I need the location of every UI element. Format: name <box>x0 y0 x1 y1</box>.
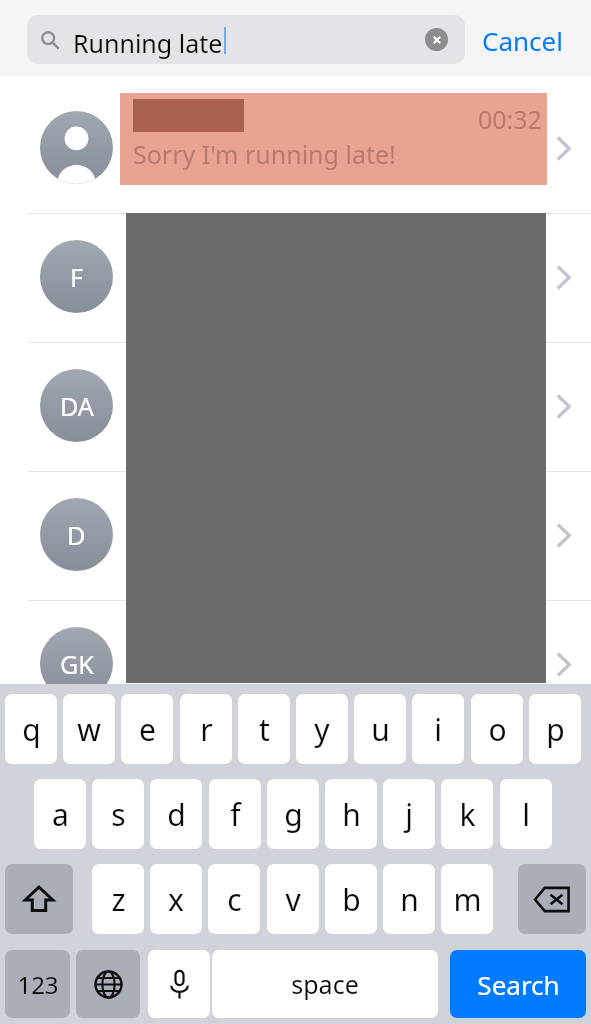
staticText: f <box>230 794 241 835</box>
staticText: space <box>291 967 359 1001</box>
staticText: Sorry I'm running late! <box>133 137 396 171</box>
button[interactable]: z <box>92 864 144 934</box>
staticText: D <box>67 518 86 552</box>
button[interactable]: f <box>209 779 261 849</box>
staticText: F <box>70 260 84 294</box>
button[interactable]: r <box>180 694 232 764</box>
button[interactable]: p <box>529 694 581 764</box>
button[interactable]: j <box>383 779 435 849</box>
button[interactable]: a <box>34 779 86 849</box>
button[interactable]: Clear search text <box>425 28 448 51</box>
button[interactable]: m <box>441 864 493 934</box>
staticText: r <box>200 709 213 750</box>
button[interactable]: v <box>267 864 319 934</box>
staticText: Running late <box>73 26 223 60</box>
button[interactable]: Running late <box>27 15 465 64</box>
button[interactable]: Dictate <box>148 950 210 1018</box>
staticText: Cancel <box>482 23 563 58</box>
staticText: h <box>342 794 361 835</box>
button[interactable] <box>0 600 591 729</box>
staticText: y <box>314 709 330 750</box>
staticText: a <box>52 794 69 835</box>
staticText: n <box>400 879 419 920</box>
button[interactable]: g <box>267 779 319 849</box>
button[interactable]: Backspace <box>518 864 586 934</box>
staticText: 00:32 <box>478 102 542 136</box>
button[interactable]: k <box>441 779 493 849</box>
staticText: j <box>405 794 413 835</box>
button[interactable]: n <box>383 864 435 934</box>
staticText: m <box>453 879 482 920</box>
button[interactable]: l <box>500 779 552 849</box>
button[interactable]: q <box>5 694 57 764</box>
staticText: s <box>111 794 126 835</box>
staticText: w <box>77 709 101 750</box>
button[interactable]: Shift <box>5 864 73 934</box>
button[interactable]: i <box>412 694 464 764</box>
button[interactable]: b <box>325 864 377 934</box>
staticText: d <box>167 794 186 835</box>
staticText: e <box>139 709 156 750</box>
button[interactable] <box>0 342 591 471</box>
staticText: p <box>546 709 565 750</box>
button[interactable]: y <box>296 694 348 764</box>
button[interactable]: Cancel <box>482 23 563 58</box>
button[interactable] <box>0 471 591 600</box>
button[interactable]: Sorry I'm running late! <box>120 93 547 185</box>
button[interactable]: w <box>63 694 115 764</box>
button[interactable]: x <box>150 864 202 934</box>
button[interactable]: s <box>92 779 144 849</box>
staticText: l <box>522 794 530 835</box>
button[interactable]: 123 <box>5 950 70 1018</box>
button[interactable]: e <box>121 694 173 764</box>
staticText: b <box>342 879 361 920</box>
staticText: q <box>22 709 41 750</box>
staticText: GK <box>60 647 94 681</box>
staticText: Search <box>477 967 560 1002</box>
staticText: DA <box>60 389 94 423</box>
staticText: t <box>259 709 270 750</box>
staticText: v <box>285 879 301 920</box>
button[interactable] <box>0 213 591 342</box>
staticText: u <box>371 709 390 750</box>
button[interactable]: Search <box>450 950 586 1018</box>
button[interactable]: d <box>150 779 202 849</box>
button[interactable]: h <box>325 779 377 849</box>
staticText: g <box>284 794 303 835</box>
staticText: 123 <box>17 968 59 1001</box>
button[interactable]: c <box>208 864 260 934</box>
button[interactable] <box>0 84 591 213</box>
button[interactable]: u <box>354 694 406 764</box>
staticText: i <box>434 709 442 750</box>
staticText: o <box>488 709 507 750</box>
staticText: c <box>227 879 242 920</box>
button[interactable]: space <box>212 950 438 1018</box>
button[interactable]: o <box>471 694 523 764</box>
button[interactable]: t <box>238 694 290 764</box>
staticText: x <box>168 879 184 920</box>
staticText: k <box>459 794 476 835</box>
staticText: z <box>111 879 126 920</box>
button[interactable]: Next keyboard <box>76 950 140 1018</box>
